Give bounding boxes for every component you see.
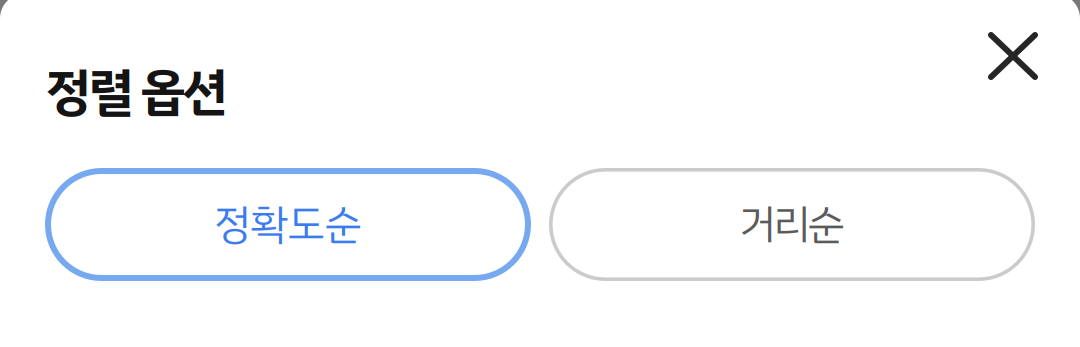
button[interactable]: Close — [957, 0, 1069, 112]
staticText: 거리순 — [739, 193, 845, 255]
button[interactable]: 거리순 — [549, 168, 1035, 281]
staticText: 정확도순 — [214, 193, 362, 255]
staticText: 정렬 옵션 — [46, 54, 228, 130]
button[interactable]: 정확도순 — [45, 168, 531, 281]
